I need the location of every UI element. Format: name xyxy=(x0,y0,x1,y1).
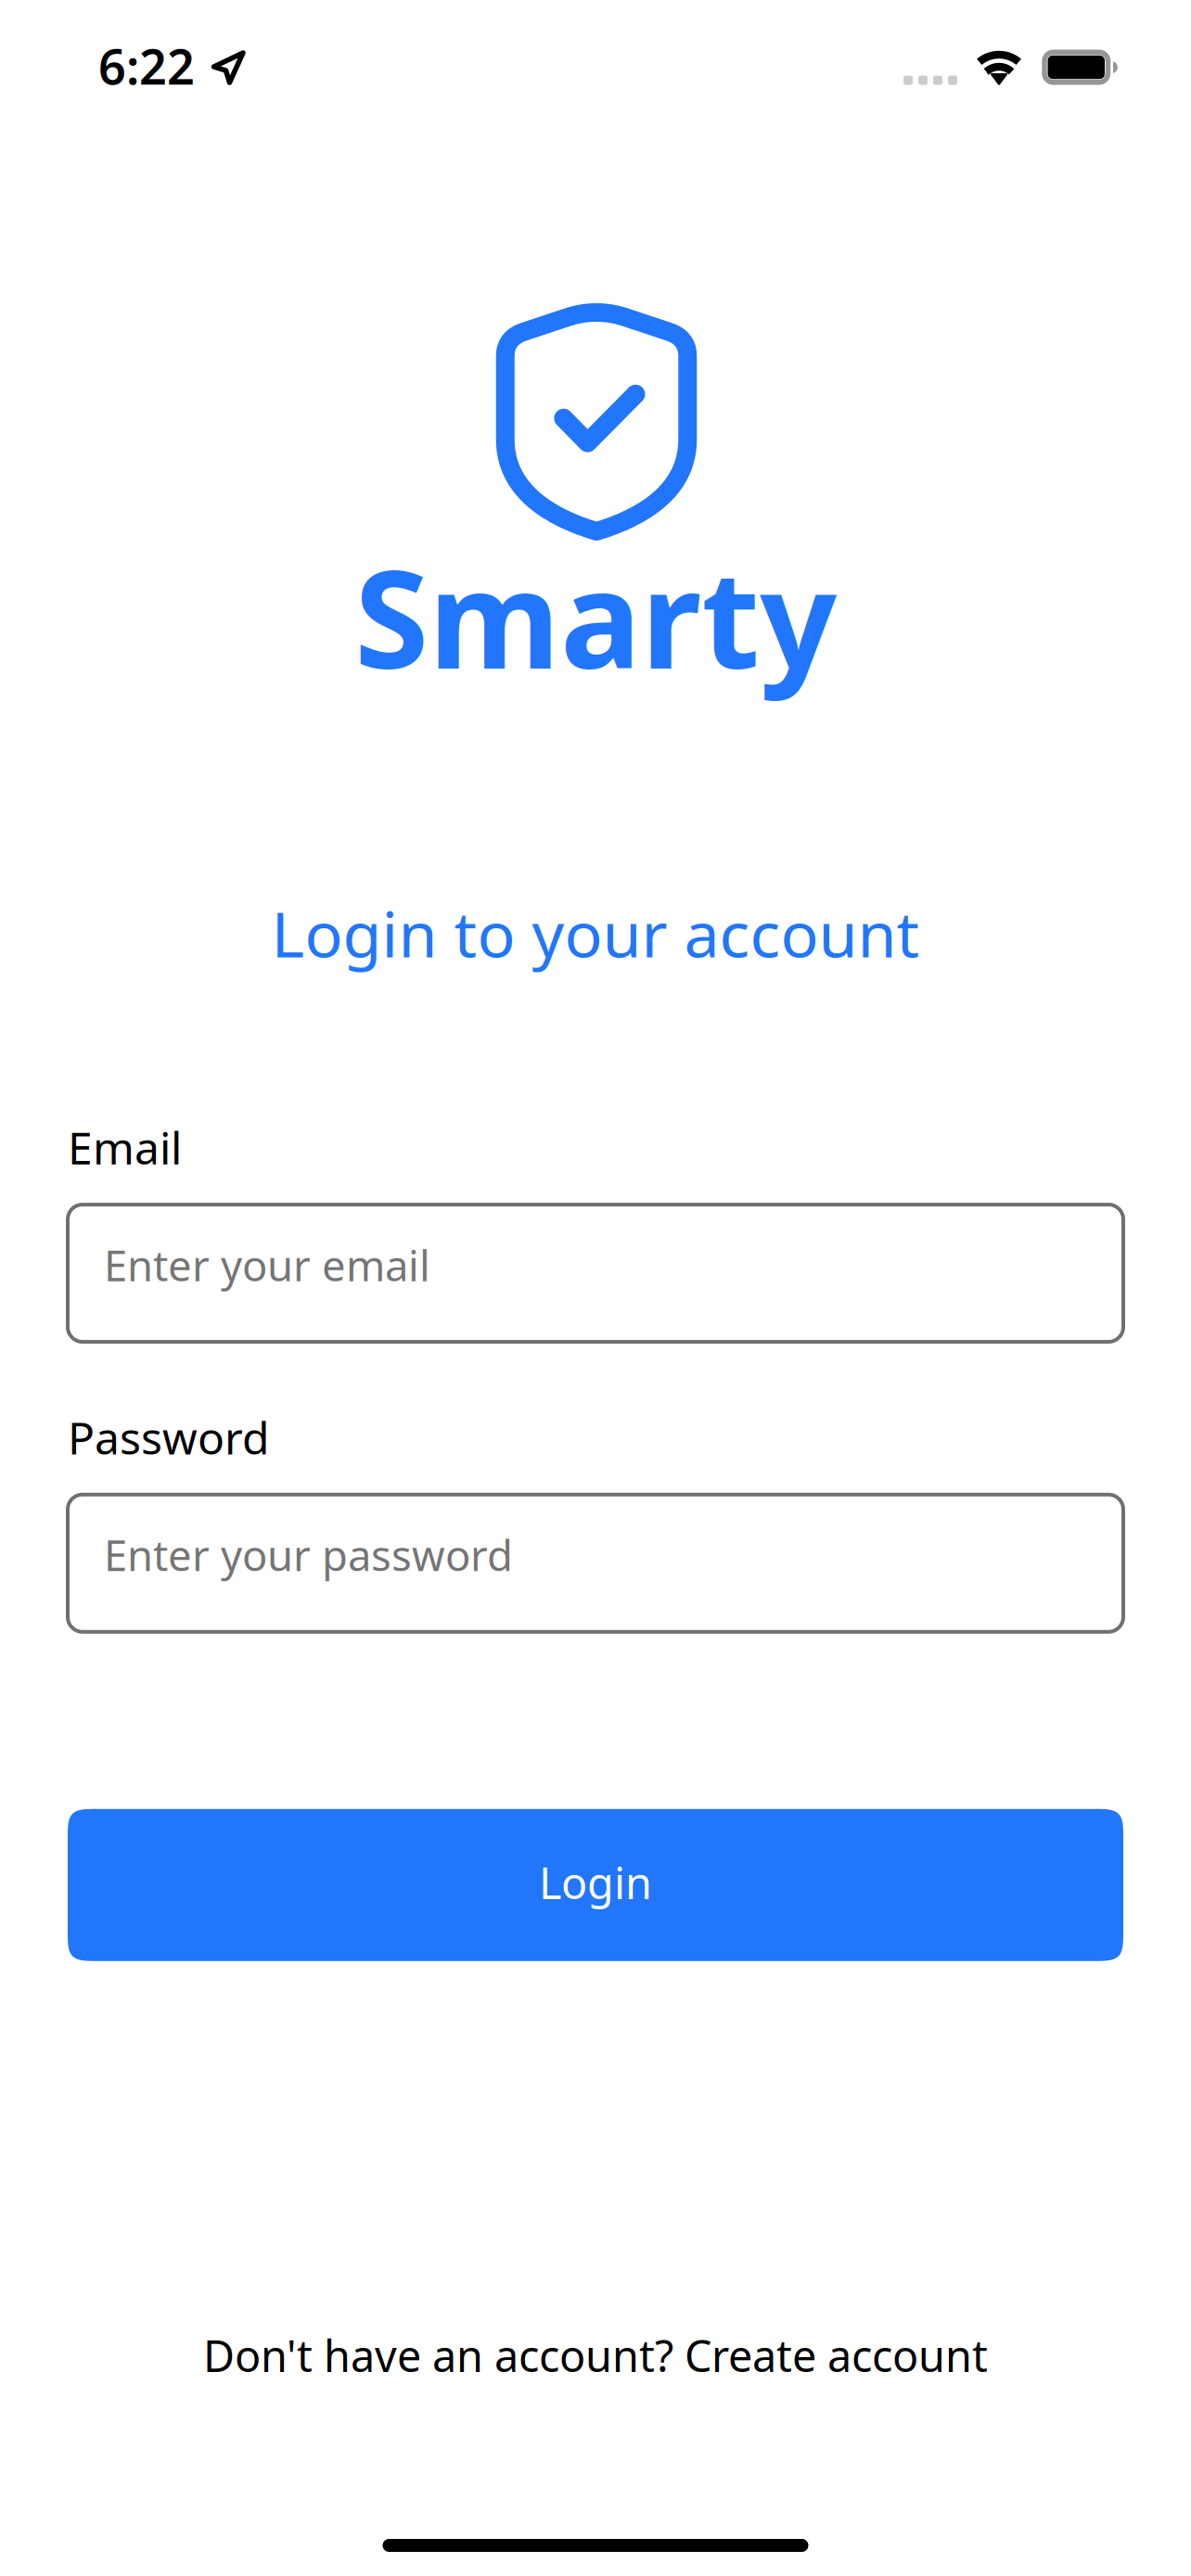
staticText: Don't have an account? Create account xyxy=(203,2327,988,2384)
staticText: 6:22 xyxy=(98,34,195,98)
staticText: Enter your password xyxy=(104,1527,513,1583)
button[interactable]: Don't have an account? Create account xyxy=(203,2327,988,2384)
staticText: Password xyxy=(68,1408,270,1467)
staticText: Login xyxy=(539,1853,652,1911)
staticText: Login to your account xyxy=(271,891,920,975)
button[interactable]: Login xyxy=(68,1809,1123,1961)
staticText: Email xyxy=(68,1118,182,1177)
staticText: Smarty xyxy=(354,527,837,706)
button[interactable]: Enter your password xyxy=(68,1495,1123,1632)
staticText: Enter your email xyxy=(104,1237,430,1293)
button[interactable]: Enter your email xyxy=(68,1205,1123,1342)
